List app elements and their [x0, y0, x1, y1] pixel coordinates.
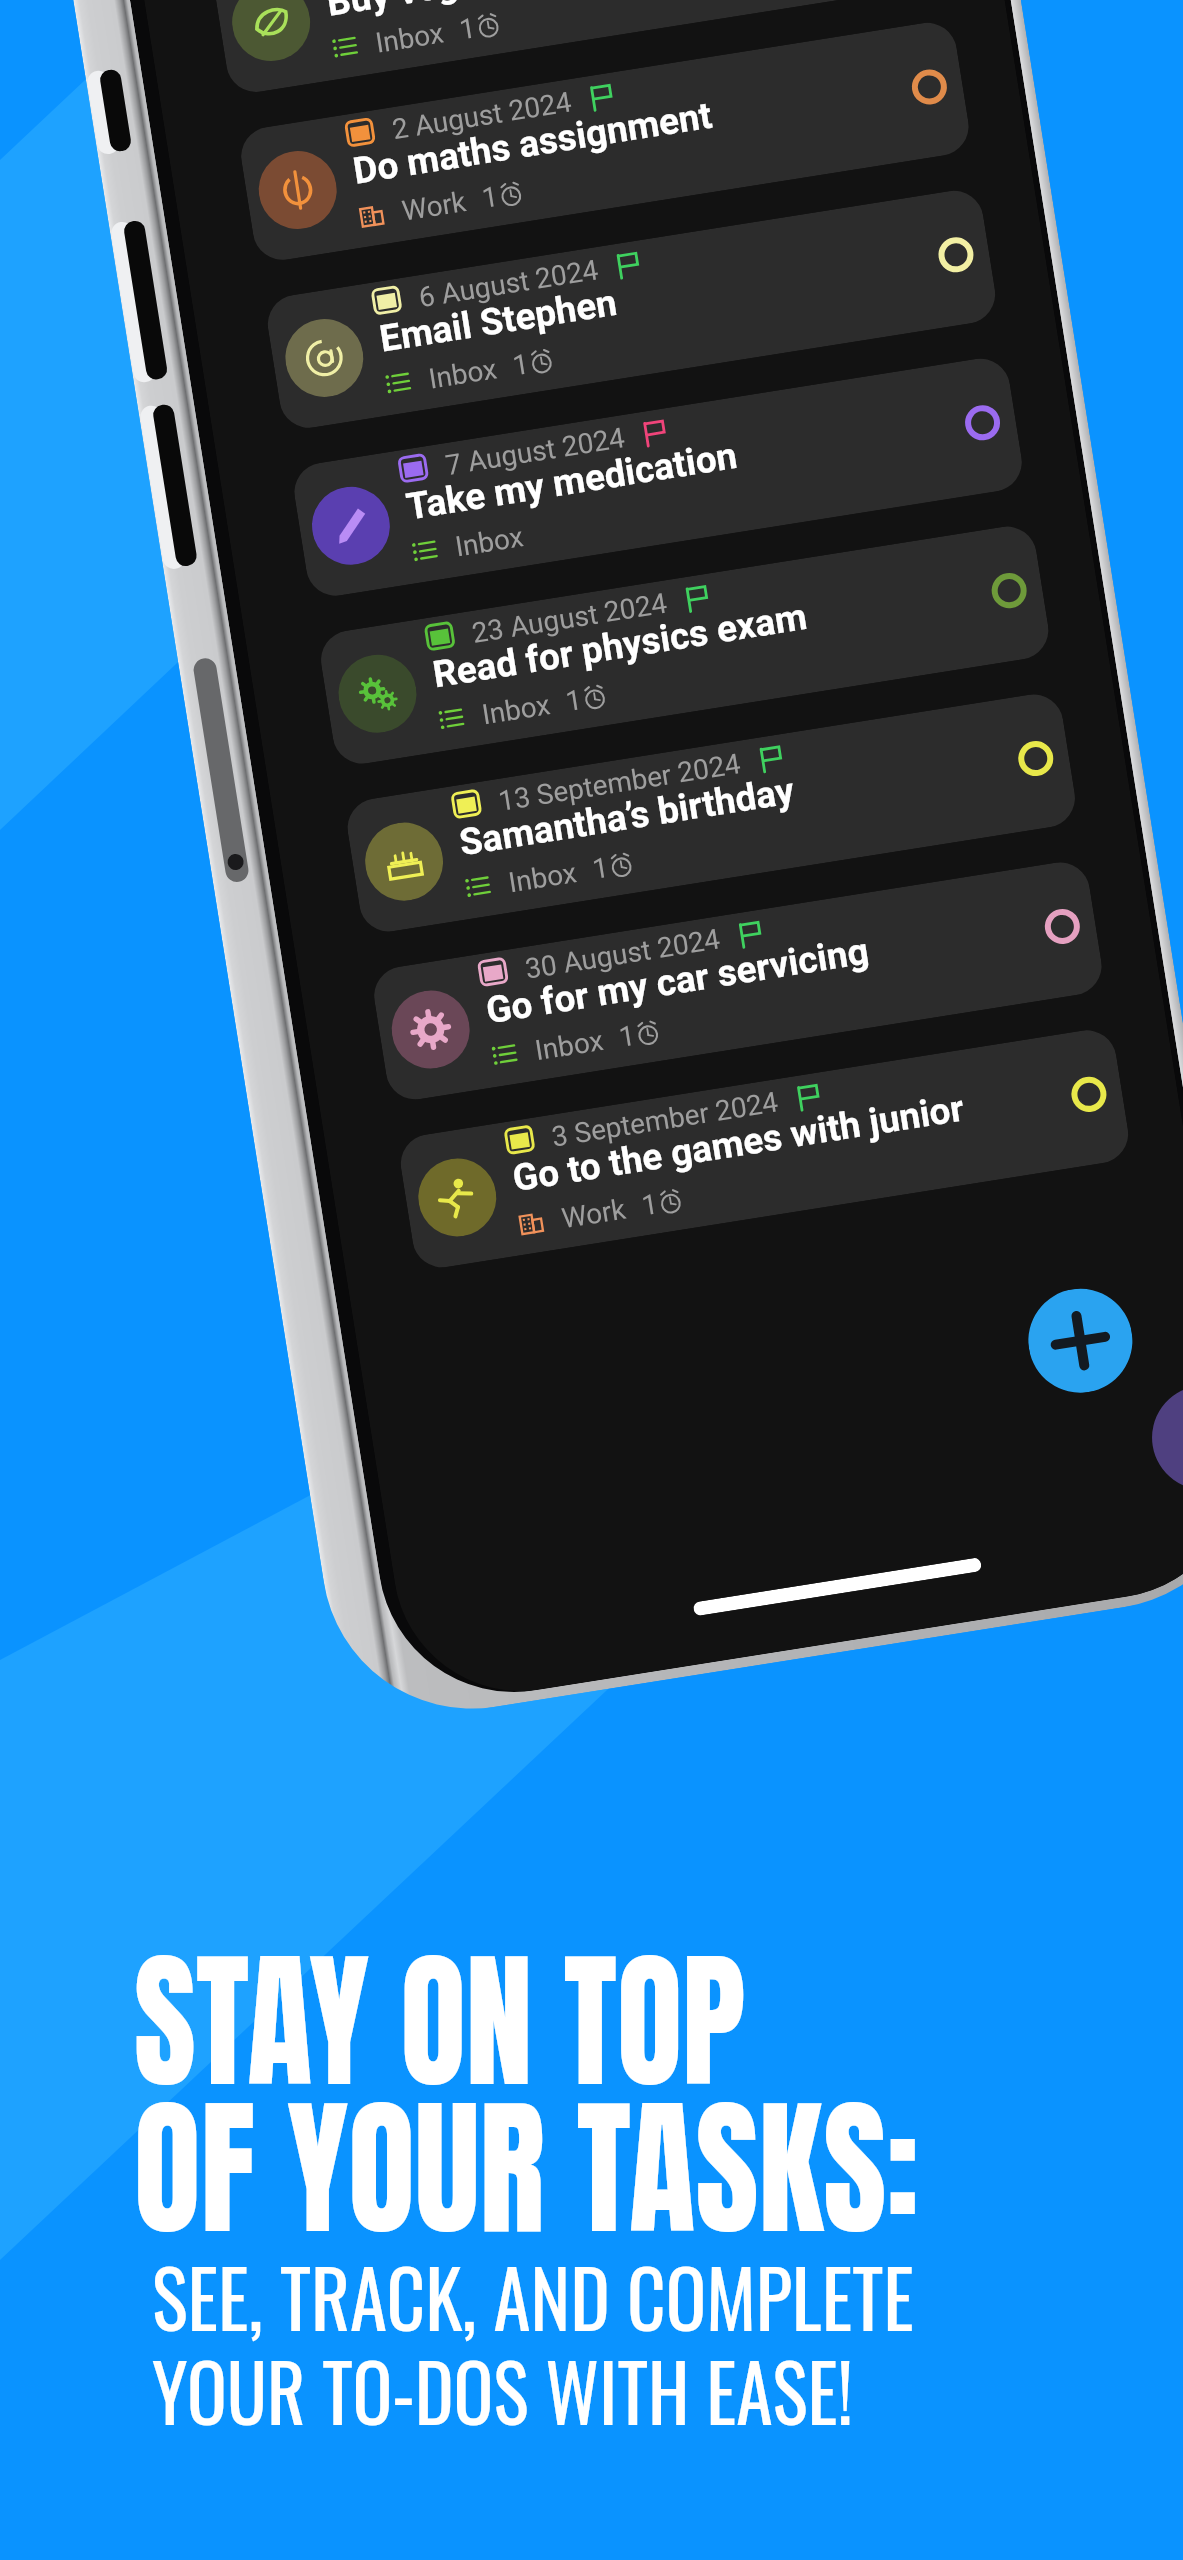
button[interactable]: 13 September 2024 [343, 690, 1079, 936]
button[interactable]: 30 August 2024 [370, 858, 1106, 1104]
staticText: OF YOUR TASKS: [134, 2056, 920, 2280]
staticText: Read for physics exam [430, 595, 810, 696]
button[interactable]: Complete task [904, 62, 954, 112]
button[interactable]: 3 September 2024 [396, 1026, 1132, 1272]
staticText: 30 August 2024 [523, 922, 723, 986]
button[interactable]: 23 August 2024 [317, 522, 1053, 768]
button[interactable]: Complete task [984, 565, 1034, 616]
staticText: Do maths assignment [350, 93, 715, 193]
staticText: SEE, TRACK, AND COMPLETE [152, 2238, 915, 2354]
staticText: 1 [563, 683, 584, 718]
staticText: Inbox [426, 352, 500, 396]
button[interactable]: 1 August 2024 [210, 0, 946, 96]
button[interactable]: Complete task [1011, 733, 1061, 784]
button[interactable]: Complete task [1037, 901, 1087, 952]
staticText: Work [400, 185, 469, 228]
button[interactable]: Complete task [1064, 1069, 1114, 1119]
staticText: 13 September 2024 [496, 747, 743, 818]
button[interactable]: Complete task [931, 230, 981, 280]
staticText: 6 August 2024 [416, 253, 600, 314]
staticText: Go to the games with junior [510, 1086, 967, 1200]
staticText: Take my medication [403, 434, 740, 529]
staticText: 1 [457, 11, 478, 46]
staticText: YOUR TO-DOS WITH EASE! [152, 2332, 854, 2448]
staticText: Inbox [533, 1024, 606, 1067]
staticText: 1 [510, 347, 531, 382]
staticText: Inbox [480, 688, 553, 731]
staticText: 1 [590, 851, 611, 886]
button[interactable]: 2 August 2024 [237, 18, 973, 264]
staticText: Inbox [453, 520, 526, 563]
staticText: 2 August 2024 [390, 85, 574, 146]
staticText: Email Stephen [377, 281, 621, 361]
staticText: Inbox [506, 856, 579, 899]
staticText: STAY ON TOP [134, 1909, 746, 2133]
staticText: 1 [480, 180, 501, 215]
staticText: 1 [617, 1019, 638, 1054]
staticText: Inbox [373, 16, 446, 60]
staticText: 1 [639, 1187, 660, 1222]
button[interactable]: Complete task [957, 398, 1008, 448]
staticText: Buy vegetables [324, 0, 581, 25]
button[interactable]: 7 August 2024 [290, 354, 1026, 600]
staticText: Samantha’s birthday [456, 769, 797, 864]
staticText: 23 August 2024 [470, 586, 669, 650]
staticText: 3 September 2024 [549, 1085, 781, 1154]
staticText: 7 August 2024 [443, 421, 627, 482]
button[interactable]: Add task [1021, 1281, 1140, 1400]
staticText: Work [559, 1192, 629, 1235]
button[interactable]: 6 August 2024 [263, 186, 999, 432]
staticText: Go for my car servicing [483, 929, 872, 1032]
